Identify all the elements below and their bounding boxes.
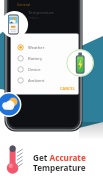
staticText: Temperature <box>28 9 55 15</box>
staticText: General <box>17 2 31 7</box>
staticText: Celsius <box>28 15 39 19</box>
staticText: Ambient <box>28 78 45 84</box>
staticText: Weather <box>28 45 45 51</box>
staticText: Get Accurate Temperature <box>33 152 86 173</box>
button[interactable]: Weather <box>28 45 45 51</box>
button[interactable]: Ambient <box>28 78 45 84</box>
staticText: Battery <box>28 56 43 62</box>
button[interactable]: CANCEL <box>60 86 75 91</box>
staticText: CANCEL <box>60 86 75 91</box>
button[interactable]: Battery <box>28 56 43 62</box>
button[interactable]: Device <box>28 67 41 73</box>
staticText: Device <box>28 67 41 73</box>
